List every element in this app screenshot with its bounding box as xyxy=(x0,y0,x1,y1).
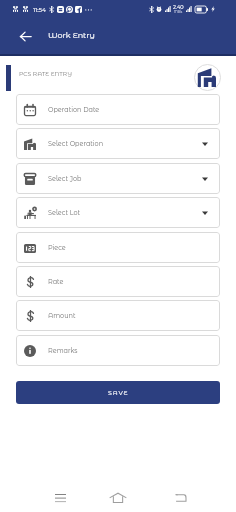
staticText: 2.40 xyxy=(173,4,184,10)
staticText: Remarks xyxy=(48,347,78,355)
button[interactable]: Back xyxy=(8,19,42,53)
button[interactable]: Select Job xyxy=(16,163,220,194)
staticText: Operation Date xyxy=(48,106,100,114)
staticText: Piece xyxy=(48,244,66,252)
button[interactable]: Operation Date xyxy=(16,94,220,125)
button[interactable]: Home xyxy=(104,484,132,512)
button[interactable]: Rate xyxy=(16,266,220,297)
button[interactable]: Remarks xyxy=(16,335,220,366)
staticText: Select Operation xyxy=(48,140,104,148)
staticText: Select Lot xyxy=(48,209,80,217)
staticText: MB/s xyxy=(174,10,183,14)
button[interactable]: Piece xyxy=(16,232,220,263)
staticText: Rate xyxy=(48,278,64,286)
button[interactable]: Select Operation xyxy=(16,128,220,159)
staticText: Amount xyxy=(48,312,76,320)
button[interactable]: Amount xyxy=(16,300,220,331)
button[interactable]: SAVE xyxy=(16,381,220,404)
staticText: PCS RATE ENTRY xyxy=(19,70,72,77)
staticText: Select Job xyxy=(48,175,82,183)
staticText: Work Entry xyxy=(48,30,95,40)
staticText: SAVE xyxy=(108,389,129,397)
staticText: 11:54 xyxy=(33,6,46,13)
button[interactable]: Recent apps xyxy=(46,484,74,512)
button[interactable]: Back xyxy=(166,484,194,512)
button[interactable]: Select Lot xyxy=(16,197,220,228)
